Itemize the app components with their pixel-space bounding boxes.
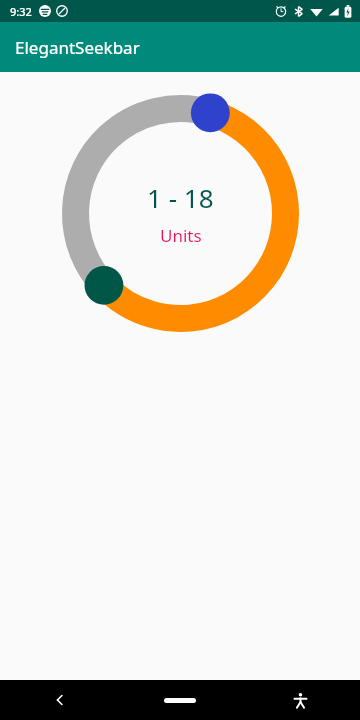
button[interactable]: Range seekbar, 1 to 18 Units (62, 95, 299, 332)
staticText: 9:32 (10, 4, 32, 19)
button[interactable]: Back (0, 680, 120, 720)
staticText: ElegantSeekbar (15, 36, 140, 59)
button[interactable]: Accessibility (240, 680, 360, 720)
button[interactable]: Home (120, 680, 240, 720)
staticText: 1 - 18 (147, 180, 214, 215)
staticText: Units (160, 224, 202, 247)
